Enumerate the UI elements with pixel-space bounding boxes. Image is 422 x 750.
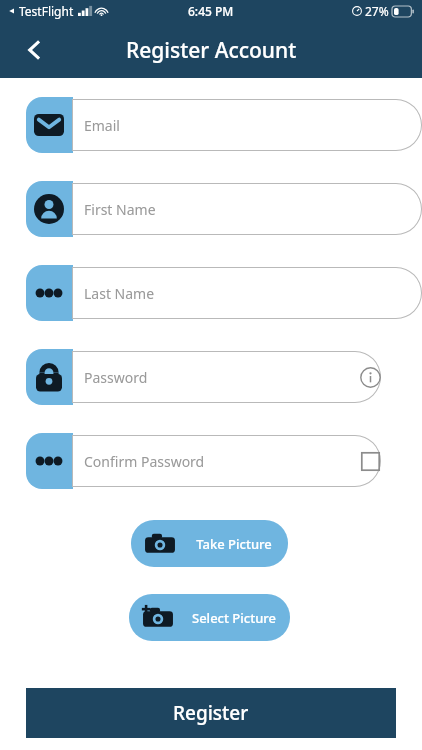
button[interactable]: Email [72, 99, 422, 151]
staticText: 6:45 PM [188, 3, 234, 19]
button[interactable]: Register [26, 688, 396, 738]
button[interactable]: First Name [72, 183, 422, 235]
button[interactable]: Take Picture [131, 520, 288, 567]
staticText: Email [84, 116, 120, 135]
staticText: TestFlight [19, 3, 74, 19]
button[interactable]: Confirm Password [72, 435, 381, 487]
staticText: Select Picture [192, 609, 276, 627]
button[interactable]: Password [72, 351, 381, 403]
staticText: Register [173, 700, 249, 726]
staticText: 27% [365, 3, 389, 19]
button[interactable]: Show password [356, 447, 384, 475]
button[interactable]: Select Picture [129, 594, 290, 641]
staticText: Take Picture [196, 535, 272, 553]
staticText: Confirm Password [84, 452, 205, 471]
staticText: Last Name [84, 284, 155, 303]
staticText: Password [84, 368, 148, 387]
staticText: Register Account [126, 36, 297, 65]
button[interactable]: Password info [356, 363, 384, 391]
button[interactable]: Back [12, 28, 56, 72]
staticText: First Name [84, 200, 156, 219]
button[interactable]: Last Name [72, 267, 422, 319]
